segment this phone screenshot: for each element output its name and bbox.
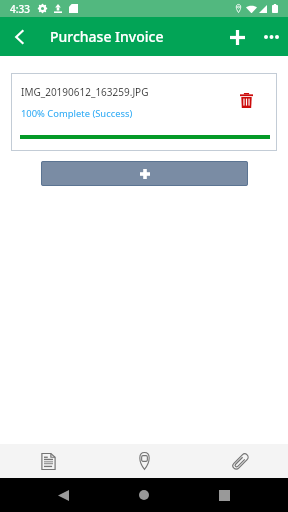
button[interactable]: More options — [254, 20, 288, 54]
staticText: IMG_20190612_163259.JPG — [21, 85, 149, 99]
staticText: 100% Complete (Success) — [21, 107, 133, 120]
staticText: Purchase Invoice — [50, 27, 164, 46]
button[interactable]: Attachments — [192, 444, 288, 478]
button[interactable]: Location — [96, 444, 192, 478]
button[interactable]: IMG_20190612_163259.JPG — [11, 73, 277, 151]
button[interactable]: Recents — [207, 478, 241, 512]
button[interactable]: Add file — [41, 161, 248, 186]
button[interactable]: Add — [220, 20, 254, 54]
button[interactable]: Home — [127, 478, 161, 512]
button[interactable]: Back — [5, 22, 34, 51]
button[interactable]: Delete — [236, 90, 256, 110]
staticText: 4:33 — [10, 2, 30, 16]
button[interactable]: Back — [46, 478, 80, 512]
button[interactable]: Documents — [0, 444, 96, 478]
